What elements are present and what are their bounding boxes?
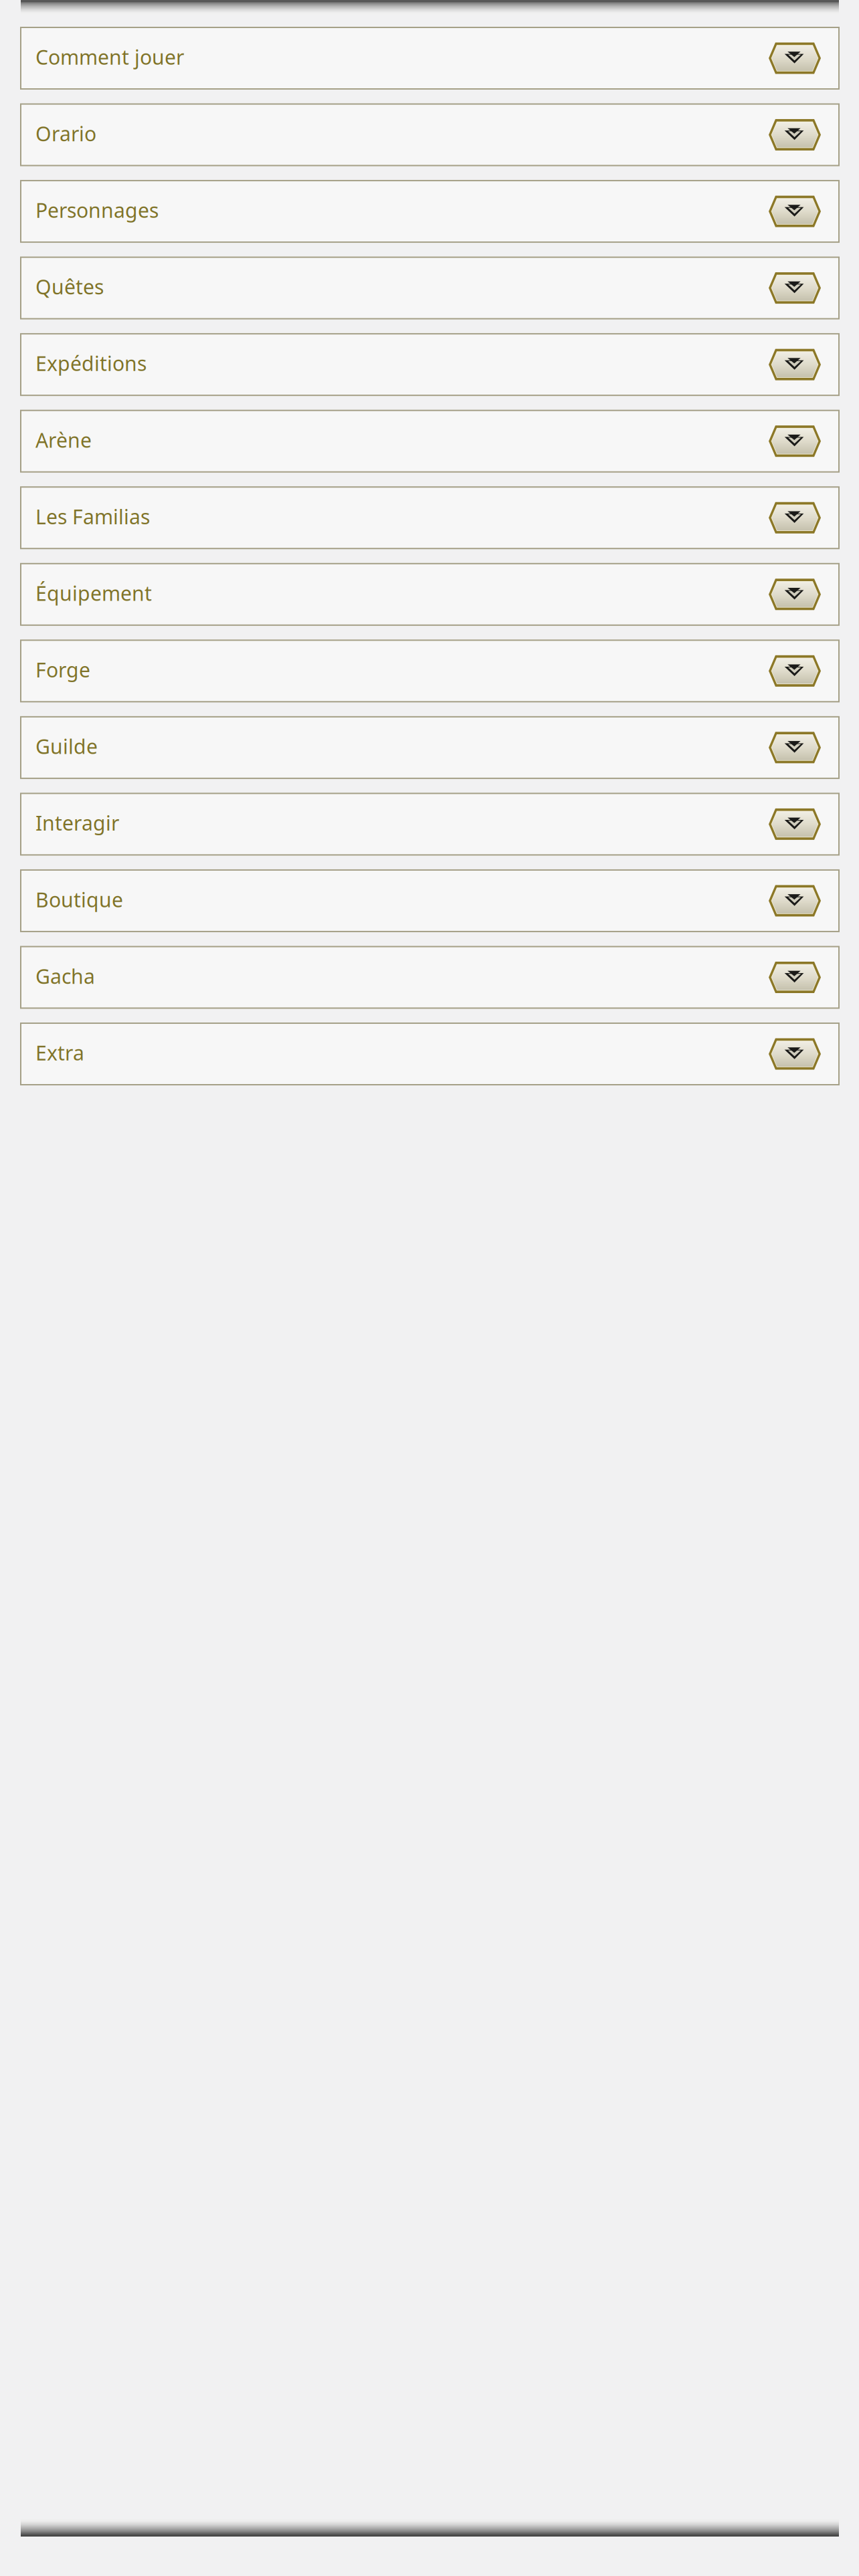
staticText: Personnages bbox=[35, 196, 159, 224]
staticText: Interagir bbox=[35, 809, 119, 837]
button[interactable]: Quêtes, développer bbox=[21, 257, 839, 319]
staticText: Boutique bbox=[35, 886, 123, 913]
button[interactable]: Interagir, développer bbox=[21, 793, 839, 855]
button[interactable]: Extra, développer bbox=[21, 1023, 839, 1085]
button[interactable]: Personnages, développer bbox=[21, 181, 839, 242]
button[interactable]: Gacha, développer bbox=[21, 947, 839, 1008]
button[interactable]: Arène, développer bbox=[21, 410, 839, 472]
button[interactable]: Boutique, développer bbox=[21, 870, 839, 931]
staticText: Arène bbox=[35, 426, 92, 454]
button[interactable]: Comment jouer, développer bbox=[21, 27, 839, 89]
staticText: Extra bbox=[35, 1039, 84, 1066]
button[interactable]: Forge, développer bbox=[21, 640, 839, 702]
staticText: Quêtes bbox=[35, 273, 104, 300]
staticText: Expéditions bbox=[35, 349, 147, 377]
staticText: Forge bbox=[35, 656, 90, 683]
staticText: Gacha bbox=[35, 962, 95, 990]
button[interactable]: Les Familias, développer bbox=[21, 487, 839, 549]
button[interactable]: Orario, développer bbox=[21, 104, 839, 166]
button[interactable]: Équipement, développer bbox=[21, 564, 839, 625]
button[interactable]: Guilde, développer bbox=[21, 717, 839, 778]
staticText: Les Familias bbox=[35, 503, 150, 530]
staticText: Orario bbox=[35, 120, 96, 147]
staticText: Comment jouer bbox=[35, 43, 184, 71]
staticText: Équipement bbox=[35, 579, 152, 607]
button[interactable]: Expéditions, développer bbox=[21, 334, 839, 395]
staticText: Guilde bbox=[35, 732, 98, 760]
